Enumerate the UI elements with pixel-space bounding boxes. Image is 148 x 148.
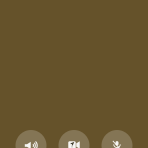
button[interactable]: Mute (101, 130, 132, 148)
button[interactable]: Video (58, 130, 89, 148)
button[interactable]: Speaker (15, 130, 46, 148)
